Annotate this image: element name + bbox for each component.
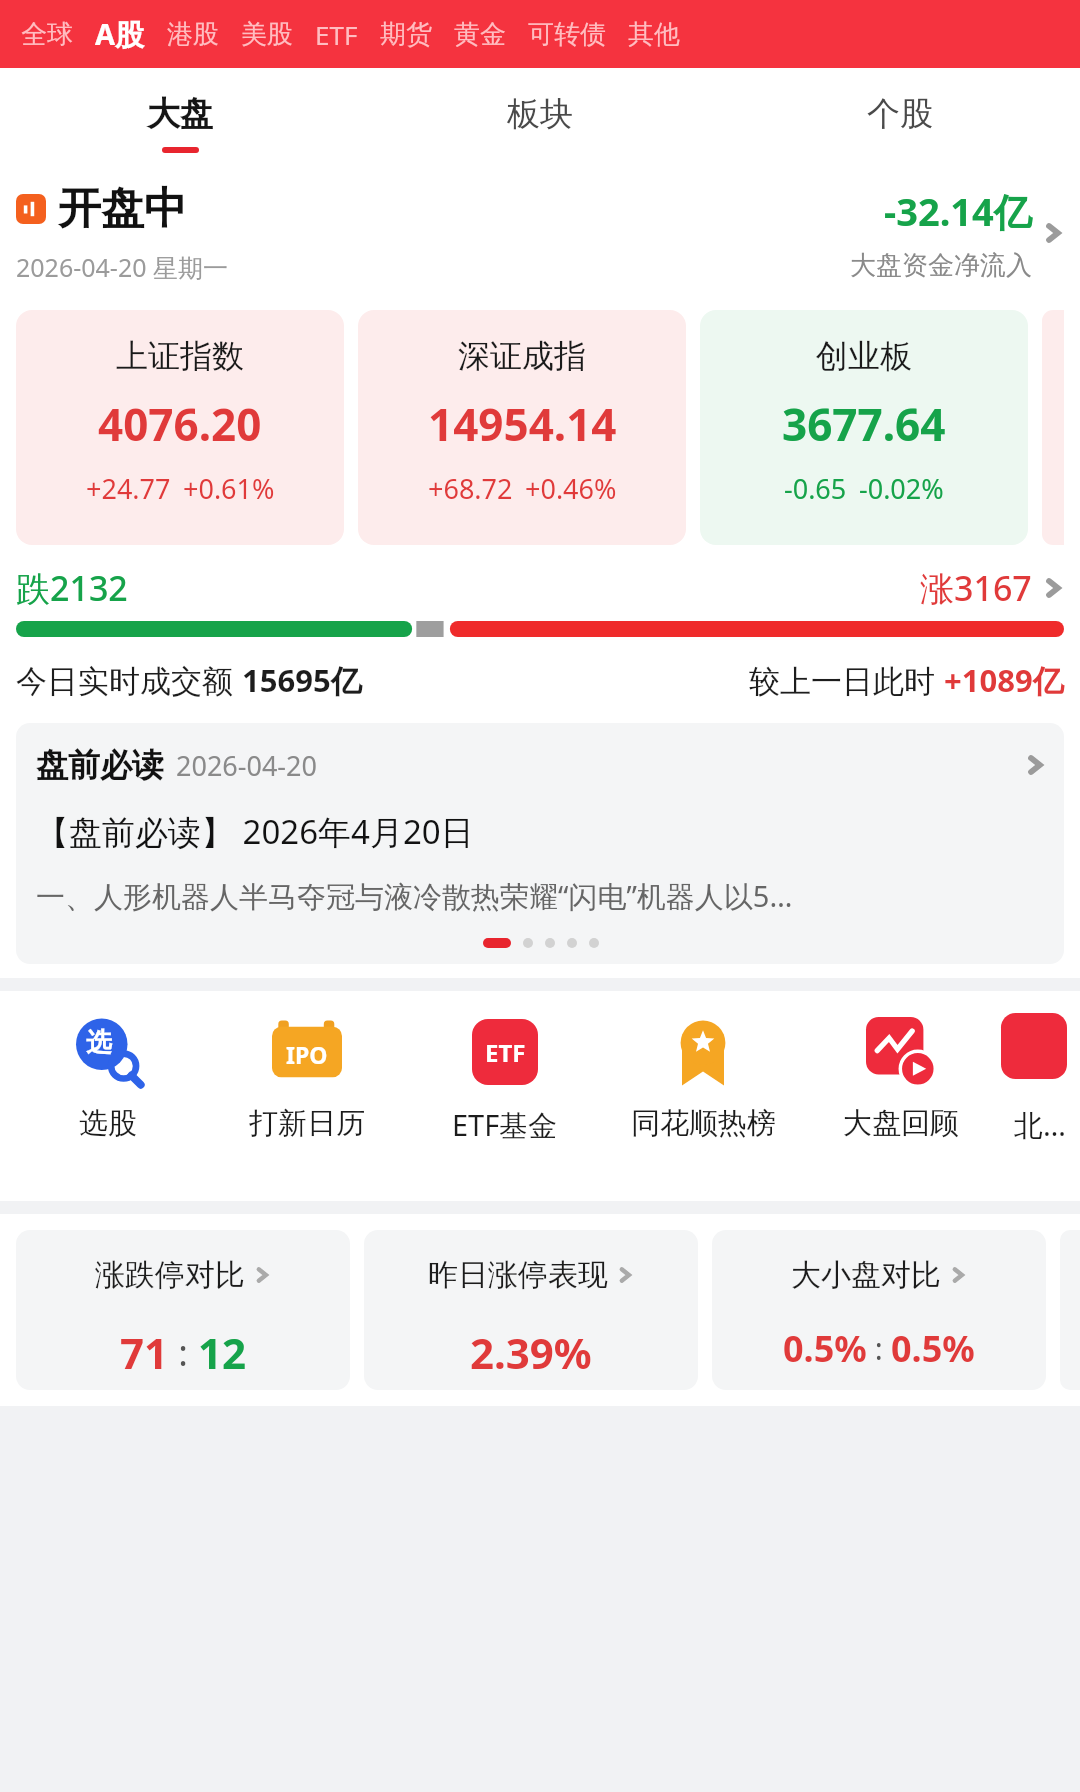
staticText: 上证指数 xyxy=(116,336,244,376)
staticText: 一、人形机器人半马夺冠与液冷散热荣耀“闪电”机器人以5… xyxy=(36,876,793,916)
staticText: 较上一日此时 xyxy=(749,659,944,701)
button[interactable]: ETF xyxy=(304,11,369,58)
staticText: 大盘资金净流入 xyxy=(850,249,1032,282)
staticText: ETF xyxy=(315,17,358,52)
staticText: 开盘中 xyxy=(58,182,187,236)
staticText: : xyxy=(169,1328,198,1377)
staticText: 15695亿 xyxy=(242,659,362,701)
staticText: 黄金 xyxy=(454,18,506,51)
button[interactable]: 大盘 xyxy=(0,68,360,178)
button[interactable]: 个股 xyxy=(720,68,1080,178)
button[interactable]: 可转债 xyxy=(517,12,617,57)
staticText: 个股 xyxy=(867,93,933,135)
staticText: 涨3167 xyxy=(920,565,1032,611)
staticText: 同花顺热榜 xyxy=(631,1105,776,1142)
staticText: +1089亿 xyxy=(944,659,1064,701)
button[interactable]: ETF xyxy=(406,1013,604,1145)
staticText: 美股 xyxy=(241,18,293,51)
staticText: -32.14亿 xyxy=(884,185,1032,237)
staticText: 打新日历 xyxy=(249,1105,365,1142)
staticText: 全球 xyxy=(21,18,73,51)
staticText: 昨日涨停表现 xyxy=(428,1256,608,1294)
staticText: 大小盘对比 xyxy=(791,1256,941,1294)
staticText: 期货 xyxy=(380,18,432,51)
staticText: 北… xyxy=(1014,1105,1066,1145)
button[interactable]: 全球 xyxy=(10,12,84,57)
staticText: 港股 xyxy=(167,18,219,51)
staticText: 盘前必读 xyxy=(36,745,164,785)
staticText: 可转债 xyxy=(528,18,606,51)
button[interactable]: 昨日涨停表现 xyxy=(364,1230,698,1390)
staticText: A股 xyxy=(95,14,145,54)
button[interactable]: 美股 xyxy=(230,12,304,57)
staticText: +24.77 xyxy=(86,470,171,507)
button[interactable]: 大小盘对比 xyxy=(712,1230,1046,1390)
staticText: 创业板 xyxy=(816,336,912,376)
button[interactable]: 选 xyxy=(8,1013,207,1142)
button[interactable]: 大盘回顾 xyxy=(802,1013,1000,1142)
staticText: -0.65 xyxy=(784,470,847,507)
button[interactable]: 跌2132 xyxy=(16,565,1064,611)
staticText: : xyxy=(867,1328,891,1369)
staticText: 2026-04-20 星期一 xyxy=(16,250,229,284)
button[interactable]: 盘前必读 xyxy=(16,723,1064,964)
staticText: 板块 xyxy=(507,93,573,135)
staticText: +0.46% xyxy=(525,470,617,507)
staticText: 其他 xyxy=(628,18,680,51)
staticText: 深证成指 xyxy=(458,336,586,376)
button[interactable]: A股 xyxy=(84,8,156,60)
staticText: 71 xyxy=(120,1324,169,1381)
staticText: 2026-04-20 xyxy=(176,747,317,784)
staticText: ETF基金 xyxy=(452,1105,558,1145)
button[interactable]: 深证成指 xyxy=(358,310,686,545)
button[interactable]: 创业板 xyxy=(700,310,1028,545)
button[interactable]: 板块 xyxy=(360,68,720,178)
staticText: +0.61% xyxy=(183,470,275,507)
staticText: 【盘前必读】 2026年4月20日 xyxy=(36,809,474,854)
button[interactable]: 北… xyxy=(1000,1013,1080,1145)
staticText: 2.39% xyxy=(470,1324,592,1381)
staticText: 0.5% xyxy=(783,1324,867,1373)
button[interactable]: 其他 xyxy=(617,12,691,57)
button[interactable]: 黄金 xyxy=(443,12,517,57)
button[interactable]: 同花顺热榜 xyxy=(604,1013,802,1142)
staticText: 4076.20 xyxy=(98,394,262,454)
button[interactable]: IPO xyxy=(207,1013,406,1142)
staticText: 12 xyxy=(198,1324,247,1381)
staticText: 跌2132 xyxy=(16,565,128,611)
staticText: ETF xyxy=(485,1036,526,1069)
staticText: +68.72 xyxy=(428,470,513,507)
staticText: 0.5% xyxy=(891,1324,975,1373)
staticText: 大盘回顾 xyxy=(843,1105,959,1142)
button[interactable]: 涨跌停对比 xyxy=(16,1230,350,1390)
staticText: 选股 xyxy=(79,1105,137,1142)
staticText: 涨跌停对比 xyxy=(95,1256,245,1294)
staticText: 今日实时成交额 xyxy=(16,659,242,701)
button[interactable]: 期货 xyxy=(369,12,443,57)
button[interactable]: 上证指数 xyxy=(16,310,344,545)
button[interactable]: 港股 xyxy=(156,12,230,57)
staticText: -0.02% xyxy=(859,470,944,507)
staticText: 大盘 xyxy=(147,93,213,135)
staticText: 3677.64 xyxy=(782,394,946,454)
staticText: IPO xyxy=(286,1039,328,1070)
staticText: 选 xyxy=(86,1026,112,1059)
button[interactable]: 开盘中 xyxy=(16,182,1064,284)
staticText: 14954.14 xyxy=(428,394,617,454)
